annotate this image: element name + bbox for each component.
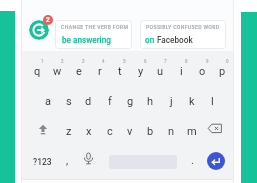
button[interactable] bbox=[207, 120, 224, 137]
button[interactable]: c bbox=[99, 118, 120, 144]
staticText: w bbox=[53, 65, 62, 78]
staticText: 0 bbox=[226, 59, 229, 64]
button[interactable]: h bbox=[140, 88, 161, 114]
staticText: , bbox=[66, 154, 69, 167]
staticText: 4 bbox=[102, 59, 105, 64]
button[interactable]: p bbox=[212, 58, 233, 84]
staticText: k bbox=[189, 95, 195, 108]
staticText: z bbox=[66, 125, 72, 138]
button[interactable]: m bbox=[181, 118, 202, 144]
staticText: ?123 bbox=[33, 157, 52, 167]
staticText: p bbox=[219, 65, 226, 78]
button[interactable]: b bbox=[140, 118, 161, 144]
button[interactable]: . bbox=[182, 148, 202, 173]
staticText: on bbox=[145, 35, 157, 45]
staticText: POSSIBLY CONFUSED WORD bbox=[146, 24, 220, 30]
staticText: 9 bbox=[206, 59, 209, 64]
staticText: Facebook bbox=[157, 35, 193, 45]
button[interactable]: o bbox=[192, 58, 213, 84]
button[interactable]: d bbox=[78, 88, 99, 114]
staticText: 7 bbox=[164, 59, 167, 64]
staticText: v bbox=[127, 125, 133, 138]
staticText: c bbox=[107, 125, 113, 138]
staticText: 2 bbox=[46, 16, 50, 24]
button[interactable]: , bbox=[57, 148, 77, 173]
staticText: 1 bbox=[41, 59, 44, 64]
staticText: 5 bbox=[123, 59, 126, 64]
button[interactable]: r bbox=[89, 58, 110, 84]
staticText: t bbox=[118, 65, 122, 78]
button[interactable]: z bbox=[58, 118, 79, 144]
staticText: q bbox=[34, 65, 41, 78]
staticText: 6 bbox=[144, 59, 147, 64]
button[interactable]: y bbox=[130, 58, 151, 84]
staticText: e bbox=[76, 65, 82, 78]
button[interactable]: x bbox=[78, 118, 99, 144]
button[interactable]: u bbox=[150, 58, 171, 84]
staticText: m bbox=[187, 125, 197, 138]
staticText: j bbox=[170, 95, 173, 108]
button[interactable] bbox=[207, 152, 225, 170]
staticText: d bbox=[85, 95, 92, 108]
staticText: u bbox=[157, 65, 164, 78]
staticText: o bbox=[199, 65, 206, 78]
staticText: f bbox=[108, 95, 112, 108]
button[interactable]: q bbox=[27, 58, 48, 84]
button[interactable]: j bbox=[161, 88, 182, 114]
button[interactable] bbox=[34, 121, 52, 138]
staticText: 2 bbox=[61, 59, 64, 64]
button[interactable]: e bbox=[68, 58, 89, 84]
staticText: l bbox=[211, 95, 214, 108]
button[interactable]: l bbox=[202, 88, 223, 114]
staticText: . bbox=[191, 154, 194, 167]
staticText: x bbox=[86, 125, 92, 138]
button[interactable]: k bbox=[181, 88, 202, 114]
button[interactable]: w bbox=[47, 58, 68, 84]
button[interactable] bbox=[83, 152, 94, 167]
button[interactable]: f bbox=[99, 88, 120, 114]
button[interactable] bbox=[55, 20, 132, 49]
staticText: b bbox=[147, 125, 154, 138]
staticText: s bbox=[66, 95, 72, 108]
button[interactable]: i bbox=[171, 58, 192, 84]
staticText: h bbox=[147, 95, 154, 108]
staticText: r bbox=[98, 65, 102, 78]
staticText: a bbox=[45, 95, 51, 108]
staticText: CHANGE THE VERB FORM bbox=[61, 24, 129, 30]
button[interactable]: s bbox=[58, 88, 79, 114]
staticText: g bbox=[127, 95, 134, 108]
button[interactable]: n bbox=[161, 118, 182, 144]
button[interactable] bbox=[29, 20, 49, 40]
button[interactable]: g bbox=[120, 88, 141, 114]
staticText: be answering bbox=[62, 35, 111, 45]
staticText: y bbox=[138, 65, 144, 78]
staticText: i bbox=[180, 65, 183, 78]
staticText: 8 bbox=[185, 59, 188, 64]
button[interactable] bbox=[140, 20, 226, 49]
button[interactable]: t bbox=[109, 58, 130, 84]
staticText: n bbox=[168, 125, 175, 138]
button[interactable]: v bbox=[119, 118, 140, 144]
staticText: 3 bbox=[82, 59, 85, 64]
button[interactable]: a bbox=[37, 88, 58, 114]
